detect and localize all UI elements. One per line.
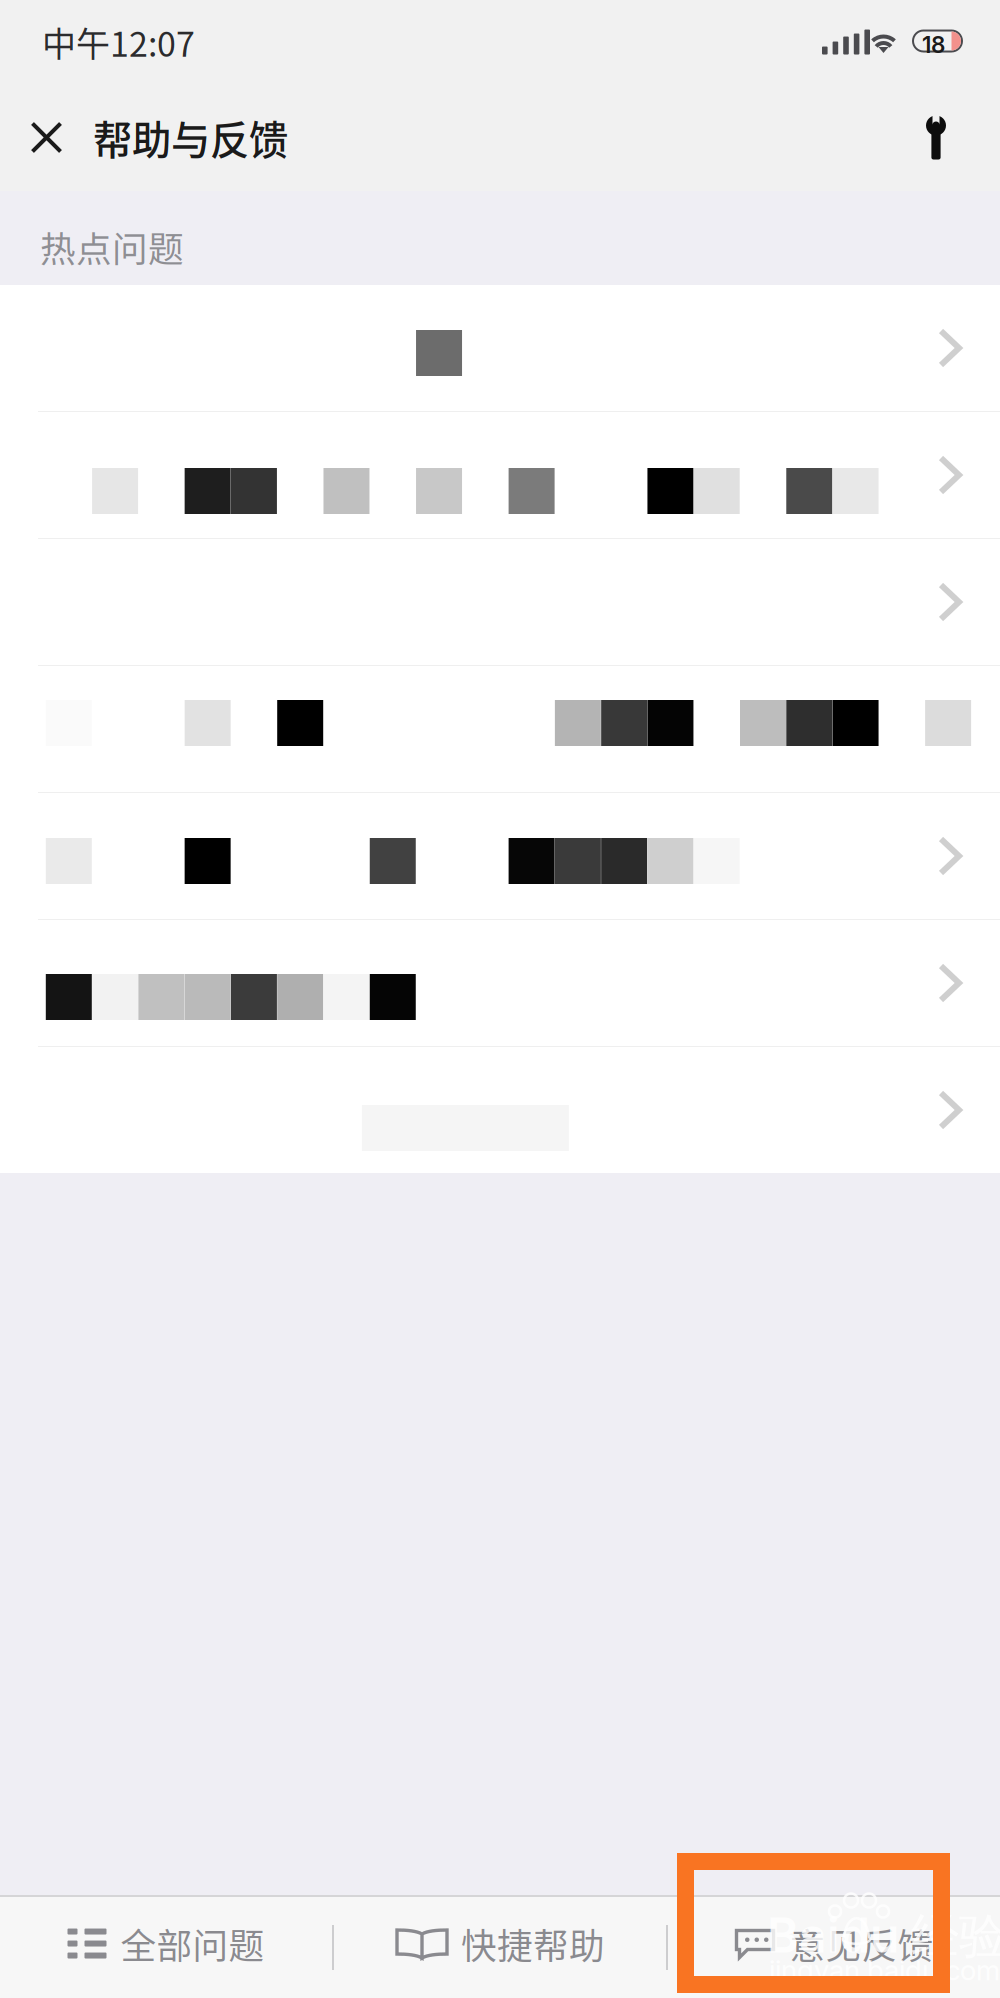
button[interactable] [0, 666, 1000, 792]
button[interactable]: 全部问题 [0, 1897, 332, 1998]
button[interactable] [0, 1047, 1000, 1173]
button[interactable] [0, 285, 1000, 411]
staticText: 快捷帮助 [461, 1918, 605, 1969]
staticText: 中午12:07 [42, 17, 195, 67]
staticText: jingyan.baidu.com [769, 1953, 1000, 1987]
button[interactable] [0, 412, 1000, 538]
button[interactable]: 关闭 [30, 97, 93, 177]
staticText: Baidu 经验 [767, 1906, 1000, 1967]
button[interactable]: 意见反馈 [668, 1897, 1000, 1998]
button[interactable] [0, 793, 1000, 919]
staticText: 帮助与反馈 [93, 109, 288, 166]
button[interactable]: 设置 [926, 95, 1000, 179]
button[interactable]: 快捷帮助 [334, 1897, 666, 1998]
staticText: 意见反馈 [789, 1918, 933, 1969]
button[interactable] [0, 920, 1000, 1046]
staticText: 热点问题 [40, 221, 184, 272]
staticText: 全部问题 [120, 1918, 264, 1969]
staticText: 18 [922, 31, 945, 58]
